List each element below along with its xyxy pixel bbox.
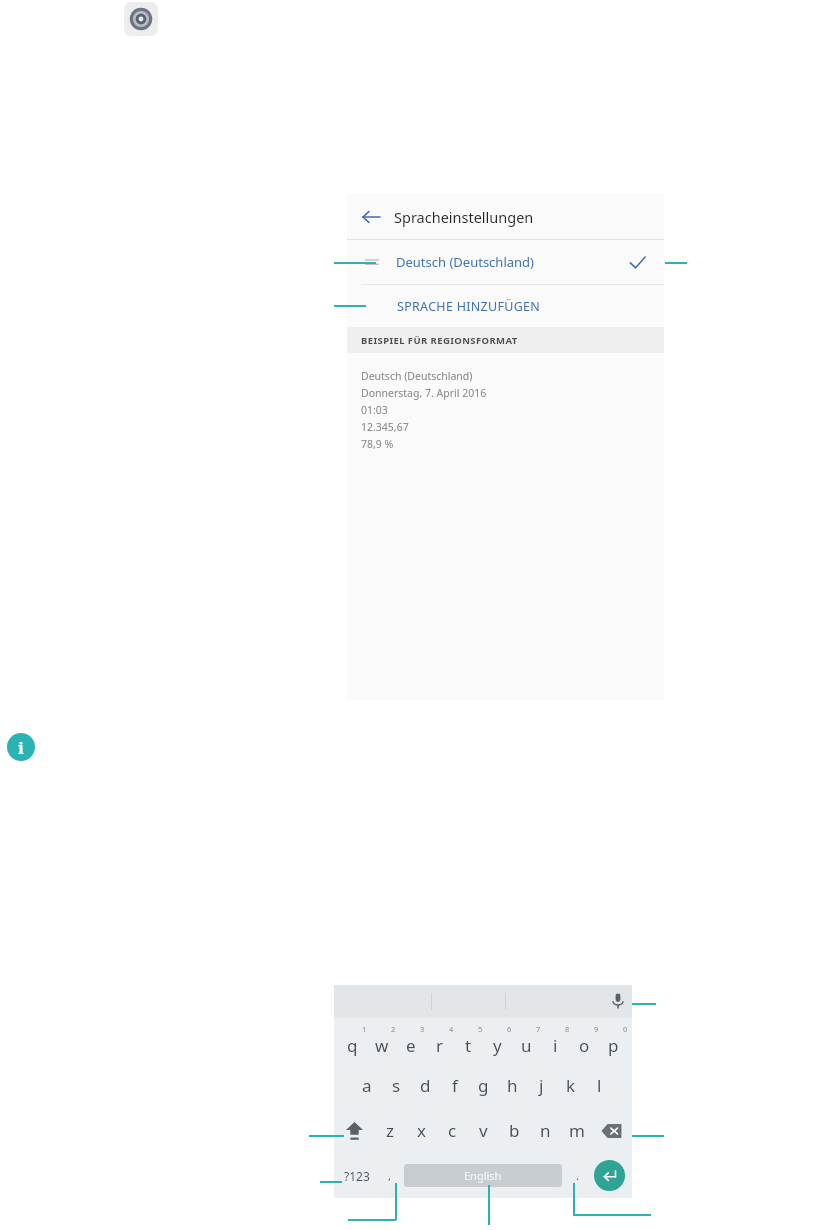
staticText: 6 bbox=[507, 1024, 512, 1034]
staticText: y bbox=[493, 1034, 502, 1057]
button[interactable]: SPRACHE HINZUFÜGEN bbox=[347, 285, 664, 327]
staticText: 12.345,67 bbox=[361, 420, 409, 434]
button[interactable]: g bbox=[469, 1063, 498, 1108]
staticText: Spracheinstellungen bbox=[394, 207, 534, 227]
staticText: , bbox=[388, 1168, 391, 1183]
staticText: w bbox=[375, 1034, 389, 1057]
staticText: English bbox=[464, 1168, 502, 1183]
button[interactable]: ?123 bbox=[334, 1153, 380, 1198]
button[interactable]: English bbox=[404, 1164, 562, 1187]
button[interactable]: n bbox=[530, 1108, 561, 1153]
staticText: 2 bbox=[391, 1024, 396, 1034]
button[interactable]: b bbox=[499, 1108, 530, 1153]
staticText: c bbox=[448, 1119, 457, 1142]
button[interactable]: f bbox=[440, 1063, 469, 1108]
staticText: u bbox=[521, 1034, 532, 1057]
button[interactable]: Voice input bbox=[608, 991, 628, 1011]
staticText: t bbox=[465, 1034, 472, 1057]
staticText: Deutsch (Deutschland) bbox=[396, 253, 534, 271]
button[interactable]: 9 bbox=[570, 1018, 599, 1063]
staticText: z bbox=[386, 1119, 394, 1142]
button[interactable]: Comma bbox=[380, 1153, 398, 1198]
staticText: . bbox=[576, 1168, 579, 1183]
button[interactable]: Period bbox=[568, 1153, 586, 1198]
button[interactable]: 1 bbox=[338, 1018, 367, 1063]
button[interactable]: 0 bbox=[599, 1018, 628, 1063]
staticText: b bbox=[509, 1119, 520, 1142]
staticText: k bbox=[566, 1074, 576, 1097]
staticText: p bbox=[608, 1034, 619, 1057]
button[interactable]: Enter bbox=[594, 1160, 625, 1191]
staticText: a bbox=[362, 1074, 372, 1097]
staticText: 0 bbox=[623, 1024, 628, 1034]
staticText: 01:03 bbox=[361, 403, 388, 417]
staticText: j bbox=[539, 1074, 544, 1097]
button[interactable]: 2 bbox=[367, 1018, 396, 1063]
staticText: e bbox=[406, 1034, 416, 1057]
button[interactable]: d bbox=[411, 1063, 440, 1108]
staticText: r bbox=[436, 1034, 444, 1057]
staticText: s bbox=[392, 1074, 401, 1097]
staticText: 8 bbox=[565, 1024, 570, 1034]
staticText: q bbox=[347, 1034, 358, 1057]
button[interactable]: 4 bbox=[425, 1018, 454, 1063]
button[interactable]: x bbox=[406, 1108, 437, 1153]
staticText: 5 bbox=[478, 1024, 483, 1034]
button[interactable]: k bbox=[556, 1063, 585, 1108]
staticText: 78,9 % bbox=[361, 437, 394, 451]
staticText: Donnerstag, 7. April 2016 bbox=[361, 386, 487, 400]
button[interactable]: a bbox=[352, 1063, 382, 1108]
staticText: i bbox=[18, 736, 24, 759]
staticText: h bbox=[507, 1074, 518, 1097]
button[interactable]: 6 bbox=[483, 1018, 512, 1063]
staticText: 1 bbox=[362, 1024, 367, 1034]
staticText: BEISPIEL FÜR REGIONSFORMAT bbox=[361, 334, 518, 347]
button[interactable]: Back bbox=[347, 194, 394, 239]
button[interactable]: z bbox=[374, 1108, 406, 1153]
button[interactable]: Deutsch (Deutschland) bbox=[347, 240, 664, 284]
button[interactable]: 5 bbox=[454, 1018, 483, 1063]
staticText: v bbox=[479, 1119, 488, 1142]
button[interactable]: 8 bbox=[541, 1018, 570, 1063]
button[interactable]: Shift bbox=[334, 1108, 374, 1153]
button[interactable]: l bbox=[585, 1063, 614, 1108]
staticText: Deutsch (Deutschland) bbox=[361, 369, 473, 383]
staticText: ?123 bbox=[344, 1168, 370, 1184]
button[interactable]: c bbox=[437, 1108, 468, 1153]
button[interactable]: App icon bbox=[124, 2, 158, 36]
staticText: 9 bbox=[594, 1024, 599, 1034]
staticText: SPRACHE HINZUFÜGEN bbox=[397, 298, 541, 315]
staticText: n bbox=[540, 1119, 551, 1142]
staticText: g bbox=[478, 1074, 489, 1097]
button[interactable]: j bbox=[527, 1063, 556, 1108]
staticText: x bbox=[417, 1119, 426, 1142]
staticText: 7 bbox=[536, 1024, 541, 1034]
staticText: o bbox=[579, 1034, 590, 1057]
staticText: l bbox=[597, 1074, 602, 1097]
button[interactable]: 7 bbox=[512, 1018, 541, 1063]
button[interactable]: v bbox=[468, 1108, 499, 1153]
button[interactable]: Info bbox=[7, 733, 35, 761]
button[interactable]: 3 bbox=[396, 1018, 425, 1063]
staticText: 3 bbox=[420, 1024, 425, 1034]
staticText: d bbox=[420, 1074, 431, 1097]
button[interactable]: s bbox=[382, 1063, 411, 1108]
button[interactable]: m bbox=[561, 1108, 592, 1153]
staticText: f bbox=[452, 1074, 458, 1097]
staticText: 4 bbox=[449, 1024, 454, 1034]
staticText: i bbox=[553, 1034, 558, 1057]
staticText: m bbox=[569, 1119, 585, 1142]
button[interactable]: h bbox=[498, 1063, 527, 1108]
button[interactable]: Backspace bbox=[592, 1108, 632, 1153]
